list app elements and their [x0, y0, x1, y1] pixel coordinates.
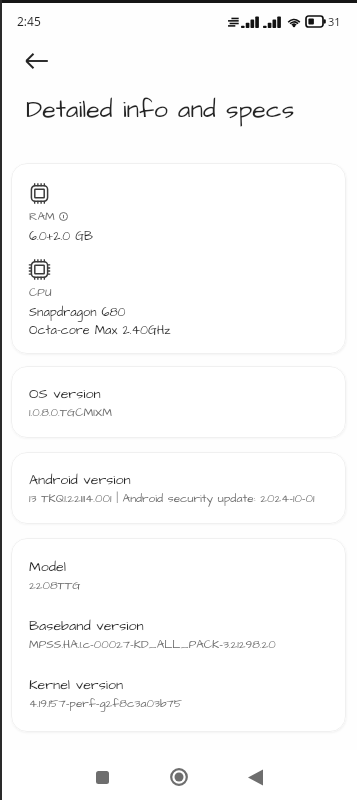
button[interactable]: RAM: [11, 163, 346, 354]
staticText: Model: [29, 557, 66, 577]
staticText: 1.0.8.0.TGCMIXM: [29, 404, 112, 420]
button[interactable]: Android version: [11, 452, 346, 524]
staticText: RAM: [29, 208, 55, 224]
button[interactable]: OS version: [11, 366, 346, 438]
staticText: Kernel version: [29, 675, 123, 695]
button[interactable]: Model: [11, 538, 346, 732]
staticText: 6.0+2.0 GB: [29, 228, 93, 246]
button[interactable]: Back: [236, 758, 274, 796]
staticText: 2:45: [17, 13, 41, 29]
staticText: MPSS.HA.1.c-00027-KD_ALL_PACK-3.21298.20: [29, 636, 276, 652]
staticText: Octa-core Max 2.40GHz: [29, 322, 171, 340]
staticText: Snapdragon 680: [29, 304, 126, 322]
staticText: 31: [328, 14, 341, 29]
button[interactable]: Recents: [83, 758, 121, 796]
staticText: OS version: [29, 384, 101, 404]
button[interactable]: Back: [20, 44, 54, 78]
staticText: Detailed info and specs: [26, 92, 295, 127]
staticText: CPU: [29, 284, 52, 300]
staticText: 4.19.157-perf-g2f8c3a03b75: [29, 695, 183, 711]
button[interactable]: Home: [160, 758, 198, 796]
staticText: Android version: [29, 470, 131, 490]
staticText: 13 TKQ1.221114.001 | Android security up…: [29, 490, 315, 506]
staticText: Baseband version: [29, 616, 144, 636]
staticText: 2208TTG: [29, 577, 81, 593]
